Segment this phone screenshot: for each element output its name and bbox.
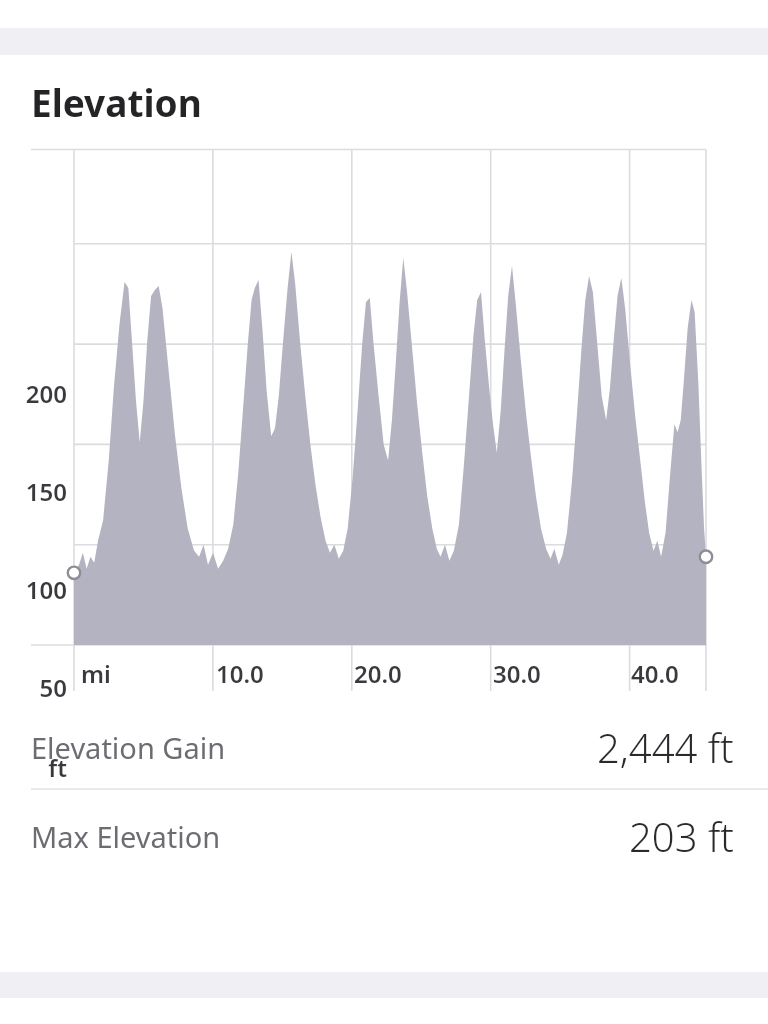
staticText: 30.0 (493, 657, 541, 690)
staticText: 200 (25, 377, 67, 407)
staticText: mi (81, 657, 111, 690)
staticText: Elevation (31, 77, 202, 127)
staticText: ft (48, 751, 67, 781)
staticText: 2,444 ft (597, 720, 734, 774)
staticText: Elevation Gain (31, 728, 226, 767)
staticText: 40.0 (631, 657, 679, 690)
staticText: 10.0 (216, 657, 264, 690)
staticText: Max Elevation (31, 817, 221, 856)
button[interactable]: Elevation Gain (0, 706, 768, 788)
staticText: 50 (39, 671, 67, 701)
staticText: 20.0 (354, 657, 402, 690)
staticText: 150 (25, 475, 67, 505)
staticText: 203 ft (629, 809, 734, 863)
other: Elevation profile chart (0, 149, 768, 686)
button[interactable]: Max Elevation (0, 790, 768, 882)
staticText: 100 (25, 573, 67, 603)
